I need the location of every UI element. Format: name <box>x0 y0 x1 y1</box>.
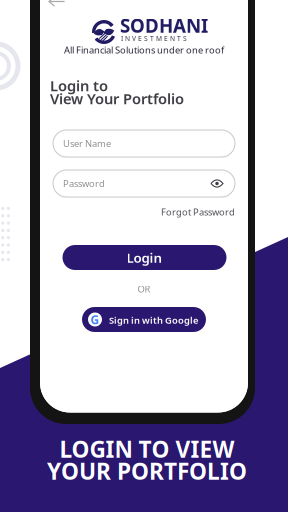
staticText: View Your Portfolio <box>50 89 184 108</box>
staticText: LOGIN TO VIEW <box>59 434 234 464</box>
button[interactable]: Forgot Password <box>53 206 235 218</box>
staticText: SODHANI <box>120 13 208 38</box>
button[interactable]: Back <box>48 0 65 7</box>
staticText: Sign in with Google <box>109 314 198 326</box>
staticText: Login <box>126 249 162 266</box>
staticText: All Financial Solutions under one roof <box>64 44 224 56</box>
staticText: Password <box>63 177 105 190</box>
button[interactable]: G <box>82 307 206 332</box>
staticText: Forgot Password <box>161 206 235 218</box>
staticText: I N V E S T M E N T S <box>121 34 187 43</box>
button[interactable]: Login <box>62 245 226 270</box>
staticText: Login to <box>50 76 108 95</box>
staticText: YOUR PORTFOLIO <box>47 456 247 486</box>
staticText: G <box>90 311 99 327</box>
staticText: OR <box>137 283 150 295</box>
button[interactable]: User Name <box>53 130 235 157</box>
staticText: User Name <box>63 137 111 150</box>
button[interactable]: Password <box>53 170 235 197</box>
